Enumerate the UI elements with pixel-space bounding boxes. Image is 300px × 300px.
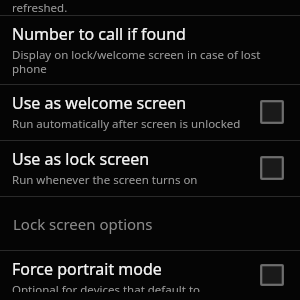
button[interactable]: Force portrait mode xyxy=(0,251,300,300)
button[interactable]: Number to call if found xyxy=(0,16,300,84)
staticText: Use as lock screen xyxy=(12,148,150,170)
staticText: Number to call if found xyxy=(12,23,186,45)
button[interactable]: refreshed. xyxy=(0,0,300,15)
button[interactable]: Use as welcome screen xyxy=(254,94,290,130)
button[interactable]: Force portrait mode xyxy=(254,258,290,292)
staticText: Optional for devices that default to lan… xyxy=(12,282,246,292)
staticText: Display on lock/welcome screen in case o… xyxy=(12,47,290,76)
button[interactable]: Use as welcome screen xyxy=(0,85,300,140)
staticText: Force portrait mode xyxy=(12,258,162,280)
staticText: Run automatically after screen is unlock… xyxy=(12,116,241,132)
staticText: Use as welcome screen xyxy=(12,92,187,114)
button[interactable]: Use as lock screen xyxy=(254,150,290,186)
staticText: refreshed. xyxy=(12,0,68,15)
button[interactable]: Use as lock screen xyxy=(0,141,300,196)
staticText: Lock screen options xyxy=(13,214,153,234)
staticText: Run whenever the screen turns on xyxy=(12,172,198,188)
